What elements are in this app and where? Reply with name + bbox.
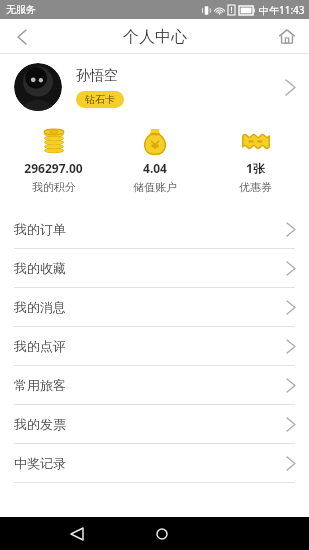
staticText: 296297.00 [24, 160, 83, 176]
button[interactable]: 孙悟空 [0, 54, 309, 120]
button[interactable]: Home [265, 19, 309, 54]
button[interactable]: Home [145, 517, 179, 550]
button[interactable]: 4.04 [107, 124, 202, 196]
staticText: 个人中心 [123, 27, 187, 47]
staticText: 我的订单 [14, 221, 66, 237]
staticText: 孙悟空 [76, 67, 118, 85]
staticText: 钻石卡 [85, 93, 115, 106]
button[interactable]: 1张 [208, 124, 303, 196]
button[interactable]: Back [0, 19, 44, 54]
staticText: 储值账户 [133, 180, 177, 194]
staticText: 1张 [246, 160, 265, 176]
button[interactable]: 296297.00 [6, 124, 101, 196]
staticText: 我的点评 [14, 338, 66, 354]
button[interactable]: 我的收藏 [0, 249, 309, 287]
button[interactable]: 我的点评 [0, 327, 309, 365]
staticText: 中奖记录 [14, 455, 66, 471]
button[interactable]: 我的订单 [0, 210, 309, 248]
button[interactable]: Back [60, 517, 94, 550]
button[interactable]: 常用旅客 [0, 366, 309, 404]
staticText: 我的发票 [14, 416, 66, 432]
staticText: 优惠券 [239, 180, 272, 194]
button[interactable]: 我的消息 [0, 288, 309, 326]
staticText: 无服务 [6, 3, 36, 16]
staticText: 我的积分 [32, 180, 76, 194]
button[interactable]: 我的发票 [0, 405, 309, 443]
staticText: 4.04 [143, 160, 167, 176]
staticText: 我的收藏 [14, 260, 66, 276]
staticText: 中午11:43 [259, 3, 305, 17]
button[interactable]: 中奖记录 [0, 444, 309, 482]
staticText: 我的消息 [14, 299, 66, 315]
staticText: 常用旅客 [14, 377, 66, 393]
